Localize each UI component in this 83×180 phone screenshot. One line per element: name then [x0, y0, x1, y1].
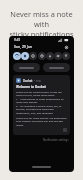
- staticText: Welcome to Docket: [16, 85, 46, 89]
- button[interactable]: [43, 63, 70, 72]
- button[interactable]: [13, 63, 40, 72]
- button[interactable]: Quick setting 3: [29, 52, 37, 60]
- staticText: Never miss a note with sticky notificati…: [3, 9, 80, 39]
- staticText: Docket: [23, 79, 33, 83]
- button[interactable]: Quick setting 6: [54, 52, 62, 60]
- button[interactable]: Quick setting 4: [38, 52, 46, 60]
- button[interactable]: Quick setting 1: [13, 52, 21, 60]
- button[interactable]: Quick setting 7: [62, 52, 70, 60]
- button[interactable]: Quick setting 2: [21, 52, 29, 60]
- staticText: • now: [34, 79, 41, 83]
- staticText: Thank you for trying Docket. To get the …: [16, 90, 67, 96]
- staticText: 9:41: [14, 38, 21, 42]
- button[interactable]: Docket: [13, 75, 70, 135]
- staticText: 1. Allow Docket to show notifications so…: [16, 97, 67, 103]
- staticText: Notification settings: [43, 138, 69, 142]
- button[interactable]: Settings: [63, 44, 69, 50]
- staticText: Thank you for using Docket. We appreciat…: [16, 116, 67, 126]
- button[interactable]: Notification settings: [41, 137, 71, 143]
- staticText: 2. Try changing a note's colour, pin, or…: [16, 104, 67, 114]
- button[interactable]: Quick setting 5: [46, 52, 54, 60]
- staticText: Sun, 29 Jun: [14, 44, 32, 49]
